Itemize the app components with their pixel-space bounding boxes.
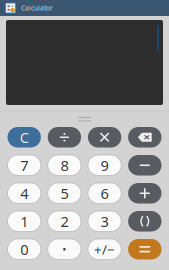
button[interactable]: Plus <box>128 183 161 203</box>
button[interactable]: 0 <box>7 239 41 259</box>
button[interactable]: Decimal point <box>48 239 81 259</box>
button[interactable]: 4 <box>7 183 41 203</box>
button[interactable]: C <box>7 127 41 147</box>
staticText: Calculator <box>21 4 53 12</box>
staticText: C <box>20 127 29 147</box>
staticText: 5 <box>60 183 68 203</box>
button[interactable]: +/− <box>88 239 121 259</box>
button[interactable]: Divide <box>48 127 81 147</box>
staticText: 0 <box>20 239 28 259</box>
staticText: 6 <box>101 183 109 203</box>
button[interactable]: 2 <box>48 211 81 231</box>
button[interactable]: 5 <box>48 183 81 203</box>
button[interactable]: 7 <box>7 155 41 175</box>
button[interactable]: Parentheses <box>128 211 161 231</box>
button[interactable]: Equals <box>128 239 161 259</box>
button[interactable]: 3 <box>88 211 121 231</box>
button[interactable]: Minus <box>128 155 161 175</box>
staticText: 2 <box>60 211 68 231</box>
staticText: 3 <box>101 211 109 231</box>
staticText: 1 <box>20 211 28 231</box>
button[interactable]: 6 <box>88 183 121 203</box>
staticText: 7 <box>20 155 28 175</box>
staticText: +/− <box>94 240 115 258</box>
staticText: 4 <box>20 183 28 203</box>
staticText: 9 <box>101 155 109 175</box>
button[interactable]: 8 <box>48 155 81 175</box>
staticText: 8 <box>60 155 68 175</box>
button[interactable]: Backspace <box>128 127 161 147</box>
button[interactable]: 1 <box>7 211 41 231</box>
button[interactable]: 9 <box>88 155 121 175</box>
button[interactable]: Multiply <box>88 127 121 147</box>
